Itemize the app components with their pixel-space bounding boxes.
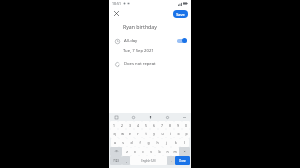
button[interactable]: Shift xyxy=(110,147,122,156)
button[interactable]: Keyboard tool 4 xyxy=(181,114,187,120)
button[interactable]: Tue, 7 Sep 2021 xyxy=(109,46,191,56)
staticText: d xyxy=(130,140,133,145)
staticText: n xyxy=(166,149,169,154)
button[interactable]: n xyxy=(163,147,171,156)
staticText: x xyxy=(134,149,136,154)
staticText: z xyxy=(126,149,128,154)
staticText: h xyxy=(156,140,159,145)
staticText: 3 xyxy=(129,123,131,128)
staticText: 6 xyxy=(153,123,155,128)
button[interactable]: Keyboard tool 3 xyxy=(164,114,170,120)
button[interactable]: i xyxy=(166,129,174,138)
button[interactable]: o xyxy=(174,129,182,138)
button[interactable]: k xyxy=(171,138,180,147)
button[interactable]: ?123 xyxy=(110,156,122,165)
staticText: k xyxy=(175,140,177,145)
staticText: e xyxy=(129,131,131,136)
staticText: l xyxy=(184,140,185,145)
button[interactable]: 8 xyxy=(166,121,174,129)
button[interactable]: Does not repeat xyxy=(109,58,191,69)
button[interactable]: j xyxy=(162,138,171,147)
button[interactable]: h xyxy=(153,138,162,147)
button[interactable]: f xyxy=(135,138,144,147)
button[interactable]: z xyxy=(122,147,131,156)
button[interactable]: l xyxy=(180,138,189,147)
button[interactable]: b xyxy=(155,147,163,156)
staticText: Done xyxy=(179,159,186,163)
staticText: Ryan birthday xyxy=(123,23,157,30)
staticText: u xyxy=(161,131,164,136)
staticText: f xyxy=(139,140,141,145)
staticText: s xyxy=(122,140,124,145)
staticText: , xyxy=(126,158,127,163)
button[interactable]: All-day xyxy=(109,35,191,46)
staticText: 5 xyxy=(145,123,147,128)
staticText: 10:51 xyxy=(112,1,121,6)
staticText: c xyxy=(142,149,144,154)
staticText: w xyxy=(121,131,124,136)
button[interactable]: q xyxy=(110,129,118,138)
staticText: i xyxy=(170,131,171,136)
button[interactable]: e xyxy=(126,129,134,138)
button[interactable]: r xyxy=(134,129,142,138)
button[interactable]: Done xyxy=(175,156,190,165)
staticText: m xyxy=(173,149,177,154)
button[interactable]: g xyxy=(144,138,153,147)
button[interactable]: Save xyxy=(173,10,188,18)
staticText: Does not repeat xyxy=(124,61,156,67)
button[interactable]: u xyxy=(158,129,166,138)
button[interactable]: a xyxy=(111,138,119,147)
staticText: o xyxy=(177,131,180,136)
staticText: q xyxy=(113,131,116,136)
button[interactable]: 6 xyxy=(150,121,158,129)
staticText: j xyxy=(166,140,167,145)
staticText: 1 xyxy=(113,123,115,128)
button[interactable]: 7 xyxy=(158,121,166,129)
staticText: a xyxy=(114,140,116,145)
button[interactable]: 1 xyxy=(110,121,118,129)
staticText: All-day xyxy=(124,38,138,44)
staticText: 0 xyxy=(185,123,187,128)
staticText: p xyxy=(185,131,188,136)
button[interactable]: 5 xyxy=(142,121,150,129)
staticText: 9 xyxy=(177,123,179,128)
button[interactable]: Backspace xyxy=(179,147,190,156)
button[interactable]: d xyxy=(127,138,135,147)
button[interactable]: y xyxy=(150,129,158,138)
button[interactable]: Keyboard tool 1 xyxy=(130,114,136,120)
staticText: 7 xyxy=(161,123,163,128)
button[interactable]: Ryan birthday xyxy=(109,20,191,32)
button[interactable]: c xyxy=(139,147,147,156)
button[interactable]: s xyxy=(119,138,127,147)
staticText: v xyxy=(150,149,152,154)
staticText: g xyxy=(147,140,150,145)
button[interactable]: Keyboard tool 0 xyxy=(113,114,119,120)
button[interactable]: p xyxy=(182,129,190,138)
staticText: ?123 xyxy=(113,159,119,163)
staticText: t xyxy=(145,131,147,136)
button[interactable]: v xyxy=(147,147,155,156)
staticText: Save xyxy=(176,12,185,17)
button[interactable]: x xyxy=(131,147,139,156)
button[interactable]: 9 xyxy=(174,121,182,129)
button[interactable]: w xyxy=(118,129,126,138)
staticText: Tue, 7 Sep 2021 xyxy=(123,48,154,54)
button[interactable]: All-day toggle xyxy=(177,38,187,43)
button[interactable]: Keyboard tool 2 xyxy=(147,114,153,120)
staticText: 4 xyxy=(137,123,139,128)
button[interactable]: t xyxy=(142,129,150,138)
button[interactable]: m xyxy=(171,147,179,156)
button[interactable]: , xyxy=(122,156,130,165)
button[interactable]: 0 xyxy=(182,121,190,129)
button[interactable]: 2 xyxy=(118,121,126,129)
staticText: b xyxy=(158,149,161,154)
button[interactable]: 4 xyxy=(134,121,142,129)
button[interactable]: 3 xyxy=(126,121,134,129)
staticText: English (UK) xyxy=(141,159,156,163)
staticText: 8 xyxy=(169,123,171,128)
button[interactable]: Close xyxy=(112,9,121,18)
staticText: 2 xyxy=(121,123,123,128)
staticText: . xyxy=(171,158,172,163)
button[interactable]: English (UK) xyxy=(130,156,167,165)
